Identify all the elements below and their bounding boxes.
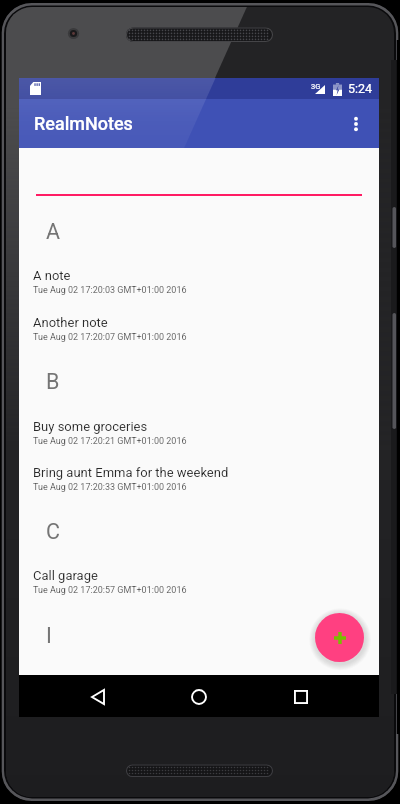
staticText: Tue Aug 02 17:20:57 GMT+01:00 2016 (33, 585, 187, 596)
staticText: Tue Aug 02 17:20:21 GMT+01:00 2016 (33, 436, 187, 447)
staticText: Tue Aug 02 17:20:07 GMT+01:00 2016 (33, 332, 187, 343)
staticText: A (46, 219, 61, 244)
button[interactable]: More options (333, 101, 379, 147)
staticText: I (46, 623, 52, 648)
staticText: Buy some groceries (33, 419, 148, 434)
staticText: A note (33, 268, 71, 283)
staticText: 5:24 (348, 81, 373, 96)
button[interactable]: Add note (315, 613, 364, 662)
button[interactable]: Bring aunt Emma for the weekend (33, 465, 364, 491)
button[interactable]: Recent apps (279, 676, 323, 718)
staticText: Call garage (33, 568, 98, 583)
button[interactable]: Home (177, 676, 221, 718)
staticText: B (46, 369, 60, 394)
button[interactable]: Call garage (33, 568, 364, 594)
staticText: Tue Aug 02 17:20:03 GMT+01:00 2016 (33, 285, 187, 296)
button[interactable]: Another note (33, 315, 364, 341)
staticText: Bring aunt Emma for the weekend (33, 465, 229, 480)
staticText: Another note (33, 315, 108, 330)
staticText: Tue Aug 02 17:20:33 GMT+01:00 2016 (33, 482, 187, 493)
button[interactable]: Buy some groceries (33, 419, 364, 445)
staticText: RealmNotes (34, 113, 133, 134)
staticText: C (46, 519, 60, 544)
button[interactable]: Back (76, 676, 120, 718)
staticText: 3G (311, 82, 321, 91)
button[interactable]: A note (33, 268, 364, 294)
